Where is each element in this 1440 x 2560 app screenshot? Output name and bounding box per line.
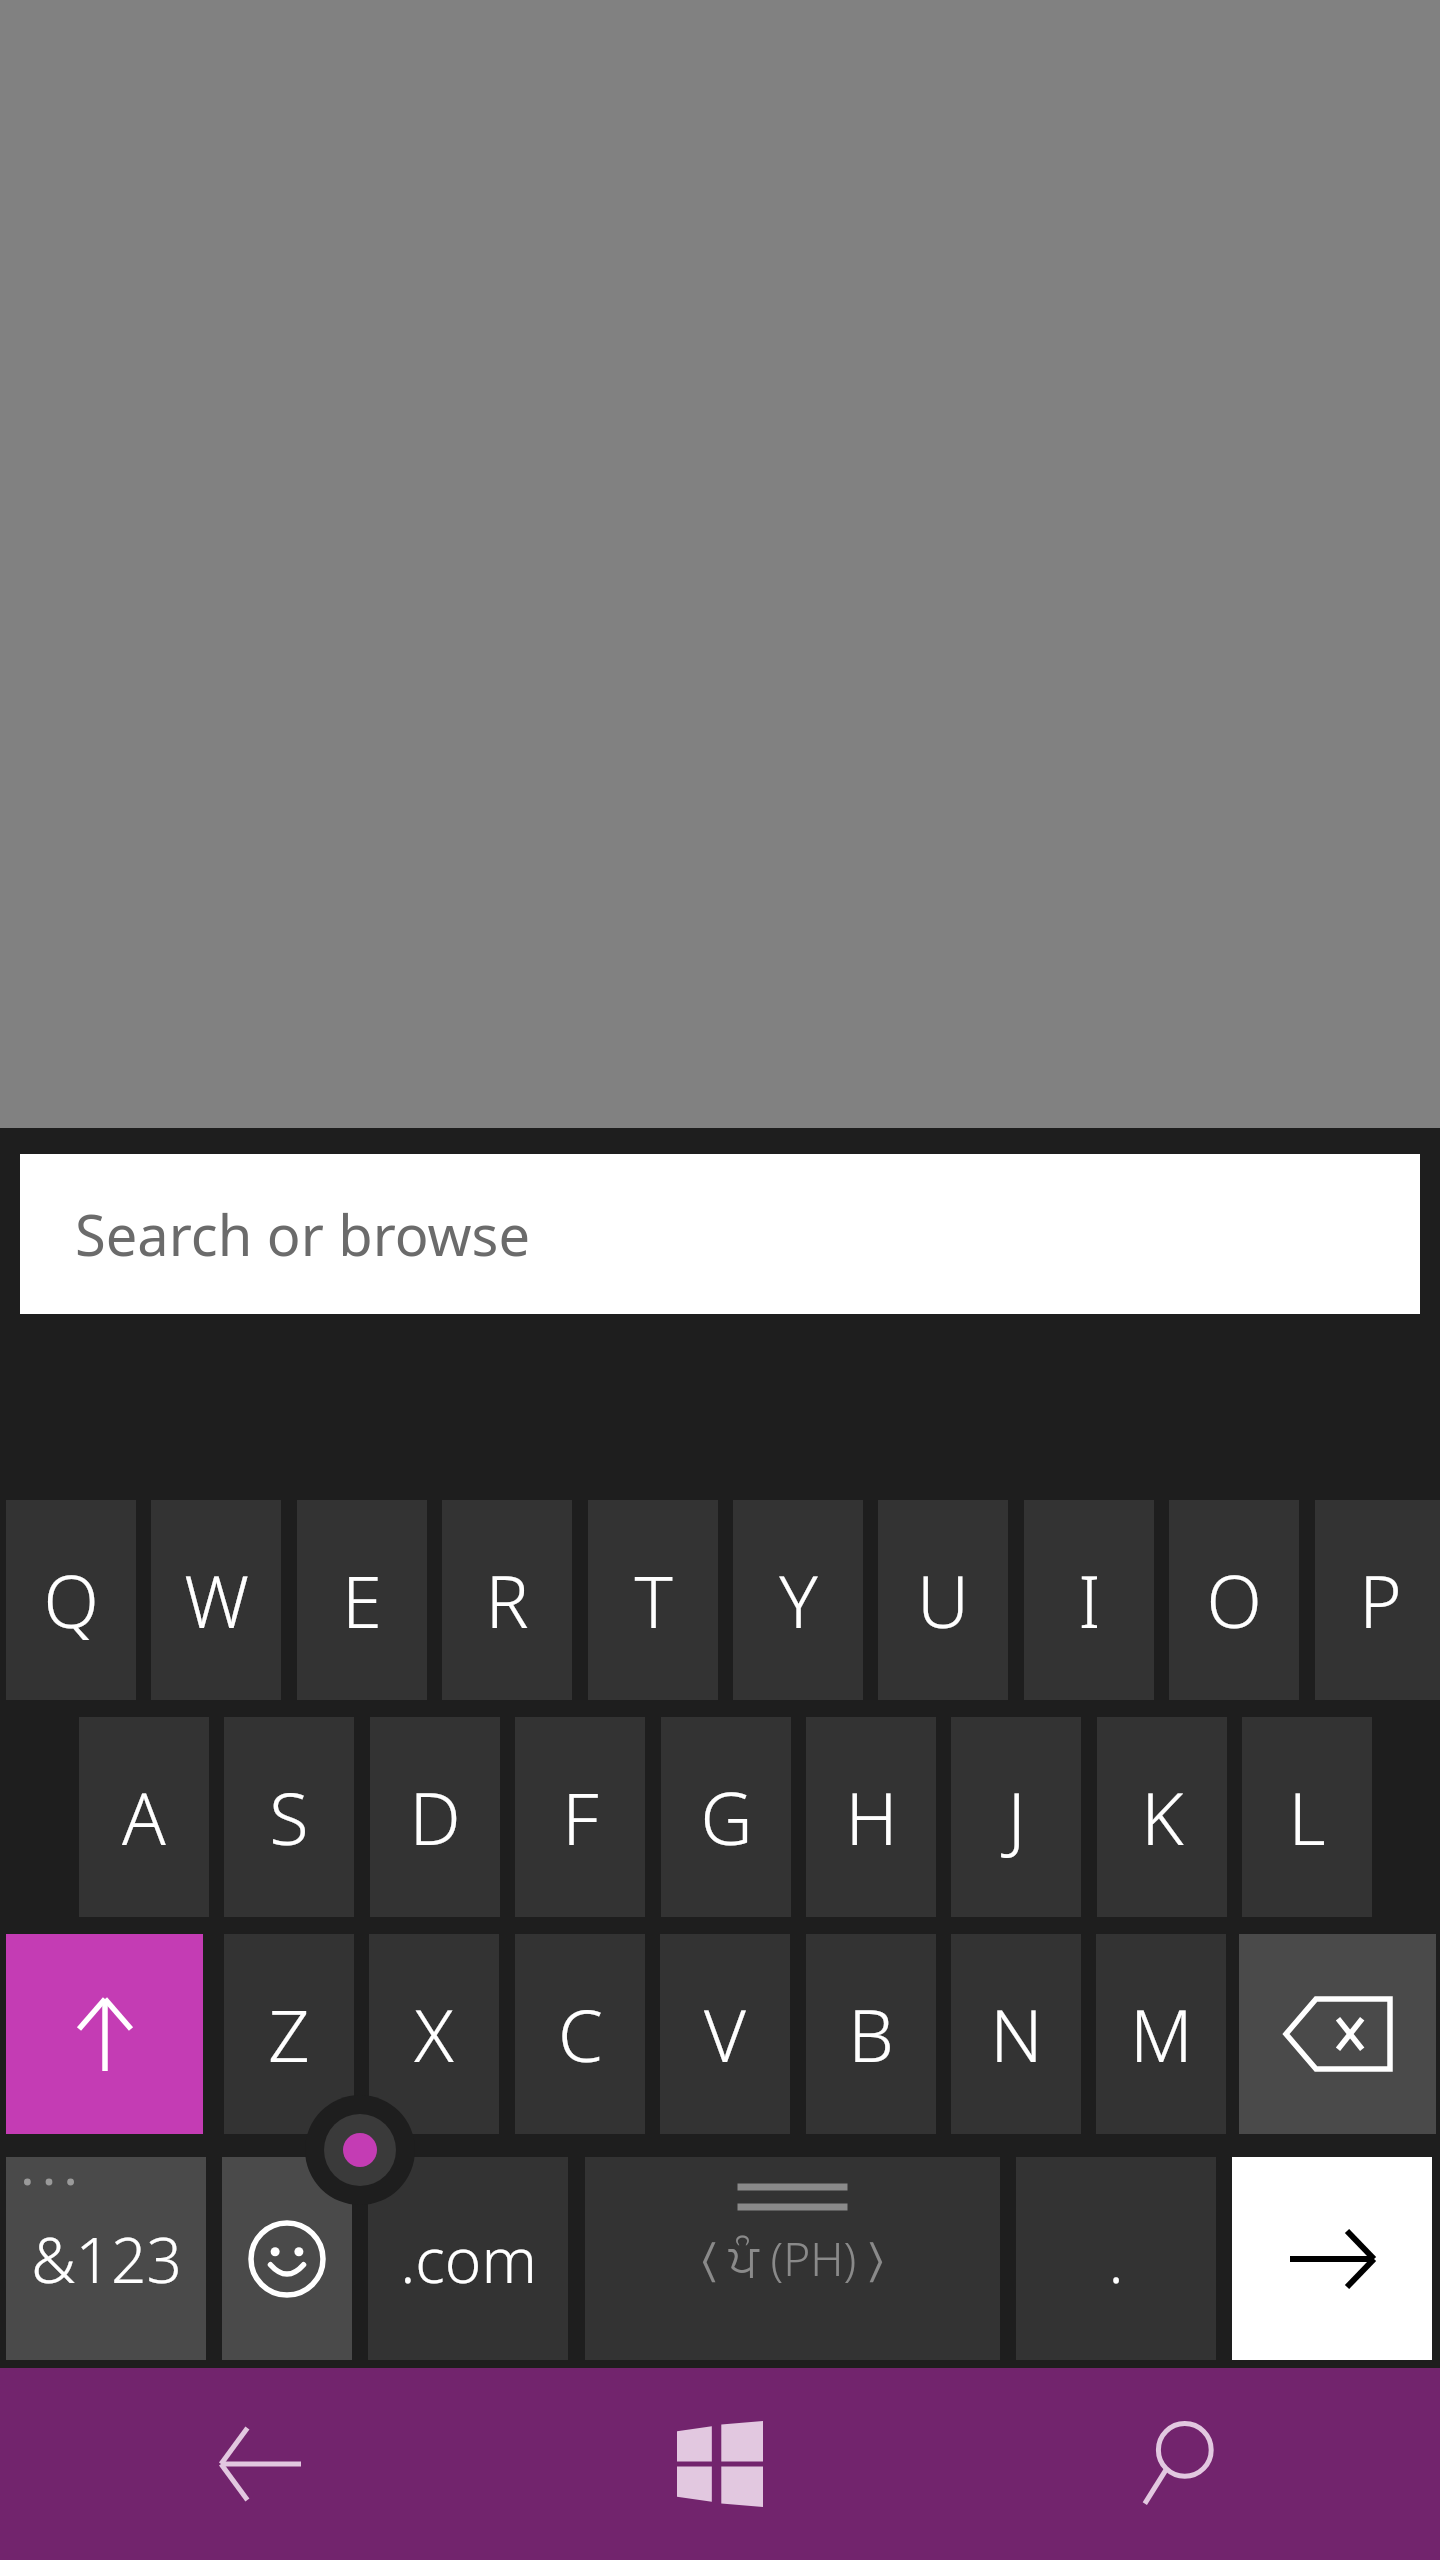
button[interactable]: D xyxy=(370,1717,500,1917)
staticText: M xyxy=(1130,1985,1193,2083)
button[interactable]: F xyxy=(515,1717,645,1917)
button[interactable]: E xyxy=(297,1500,427,1700)
staticText: E xyxy=(342,1551,382,1649)
staticText: Z xyxy=(268,1985,310,2083)
button[interactable]: U xyxy=(878,1500,1008,1700)
button[interactable]: W xyxy=(151,1500,281,1700)
staticText: A xyxy=(122,1768,166,1866)
staticText: 〈 ਪੰ (PH) 〉 xyxy=(701,2227,884,2290)
button[interactable]: M xyxy=(1096,1934,1226,2134)
staticText: K xyxy=(1141,1768,1184,1866)
button[interactable]: A xyxy=(79,1717,209,1917)
button[interactable]: Y xyxy=(733,1500,863,1700)
staticText: U xyxy=(917,1551,969,1649)
staticText: X xyxy=(414,1985,454,2083)
button[interactable]: T xyxy=(588,1500,718,1700)
staticText: N xyxy=(990,1985,1043,2083)
button[interactable]: Q xyxy=(6,1500,136,1700)
button[interactable]: P xyxy=(1315,1500,1440,1700)
staticText: L xyxy=(1288,1768,1326,1866)
button[interactable]: Space xyxy=(585,2157,1000,2360)
button[interactable]: Z xyxy=(224,1934,354,2134)
staticText: C xyxy=(558,1985,603,2083)
button[interactable]: Emoji xyxy=(222,2157,352,2360)
button[interactable]: O xyxy=(1169,1500,1299,1700)
staticText: T xyxy=(634,1551,673,1649)
staticText: V xyxy=(704,1985,746,2083)
button[interactable]: S xyxy=(224,1717,354,1917)
staticText: J xyxy=(1007,1768,1026,1866)
staticText: &123 xyxy=(31,2217,182,2301)
staticText: W xyxy=(184,1551,249,1649)
staticText: G xyxy=(700,1768,753,1866)
staticText: .com xyxy=(400,2217,537,2301)
button[interactable]: Symbols and numbers xyxy=(6,2157,206,2360)
staticText: I xyxy=(1078,1551,1101,1649)
staticText: D xyxy=(409,1768,461,1866)
button[interactable]: Enter xyxy=(1232,2157,1432,2360)
button[interactable]: C xyxy=(515,1934,645,2134)
button[interactable]: L xyxy=(1242,1717,1372,1917)
button[interactable]: Search or browse xyxy=(20,1154,1420,1314)
staticText: . xyxy=(1108,2217,1124,2301)
button[interactable]: H xyxy=(806,1717,936,1917)
staticText: Search or browse xyxy=(75,1196,530,1272)
button[interactable]: K xyxy=(1097,1717,1227,1917)
button[interactable]: R xyxy=(442,1500,572,1700)
button[interactable]: N xyxy=(951,1934,1081,2134)
button[interactable]: .com xyxy=(368,2157,568,2360)
staticText: B xyxy=(848,1985,894,2083)
staticText: Y xyxy=(779,1551,818,1649)
button[interactable]: Back xyxy=(160,2368,360,2560)
staticText: H xyxy=(845,1768,898,1866)
button[interactable]: I xyxy=(1024,1500,1154,1700)
button[interactable]: Backspace xyxy=(1239,1934,1436,2134)
button[interactable]: . xyxy=(1016,2157,1216,2360)
button[interactable]: V xyxy=(660,1934,790,2134)
staticText: Q xyxy=(43,1551,99,1649)
button[interactable]: Start xyxy=(620,2368,820,2560)
button[interactable]: G xyxy=(661,1717,791,1917)
button[interactable]: X xyxy=(369,1934,499,2134)
staticText: R xyxy=(485,1551,529,1649)
button[interactable]: Shift xyxy=(6,1934,203,2134)
button[interactable]: Search xyxy=(1080,2368,1280,2560)
staticText: P xyxy=(1359,1551,1402,1649)
staticText: F xyxy=(562,1768,599,1866)
button[interactable]: B xyxy=(806,1934,936,2134)
staticText: S xyxy=(269,1768,309,1866)
button[interactable]: J xyxy=(951,1717,1081,1917)
staticText: O xyxy=(1206,1551,1262,1649)
